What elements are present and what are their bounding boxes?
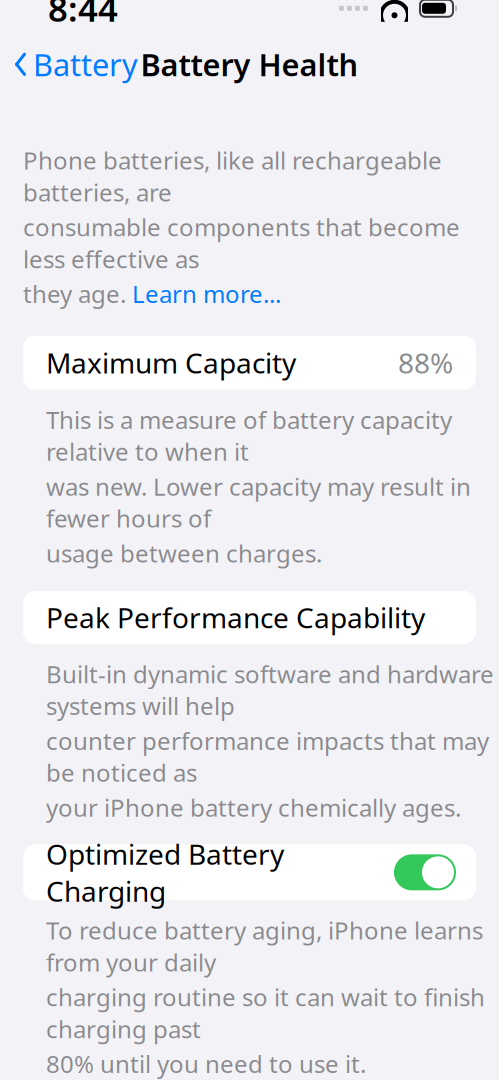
staticText: Optimized Battery Charging	[46, 835, 284, 910]
button[interactable]: Optimized Battery Charging	[23, 844, 476, 900]
staticText: was new. Lower capacity may result in fe…	[46, 470, 471, 534]
staticText: they age.	[23, 278, 132, 310]
staticText: 80% until you need to use it.	[46, 1048, 366, 1080]
staticText: Battery Health	[140, 44, 358, 85]
staticText: usage between charges.	[46, 537, 322, 569]
staticText: 8:44	[48, 0, 118, 31]
staticText: This is a measure of battery capacity re…	[46, 404, 452, 467]
staticText: Maximum Capacity	[46, 344, 296, 381]
staticText: Peak Performance Capability	[46, 599, 425, 636]
staticText: your iPhone battery chemically ages.	[46, 791, 461, 823]
staticText: Built-in dynamic software and hardware s…	[46, 658, 494, 722]
staticText: Phone batteries, like all rechargeable b…	[23, 144, 442, 208]
staticText: 88%	[398, 344, 453, 381]
button[interactable]: Learn more...	[132, 278, 281, 310]
staticText: Battery	[33, 44, 138, 85]
button[interactable]: Battery	[0, 36, 152, 93]
staticText: Learn more...	[132, 278, 281, 310]
button[interactable]: Maximum Capacity	[23, 336, 476, 390]
staticText: To reduce battery aging, iPhone learns f…	[46, 914, 483, 978]
button[interactable]: Peak Performance Capability	[23, 591, 476, 644]
staticText: consumable components that become less e…	[23, 211, 460, 275]
staticText: charging routine so it can wait to finis…	[46, 981, 485, 1045]
staticText: counter performance impacts that may be …	[46, 725, 489, 788]
